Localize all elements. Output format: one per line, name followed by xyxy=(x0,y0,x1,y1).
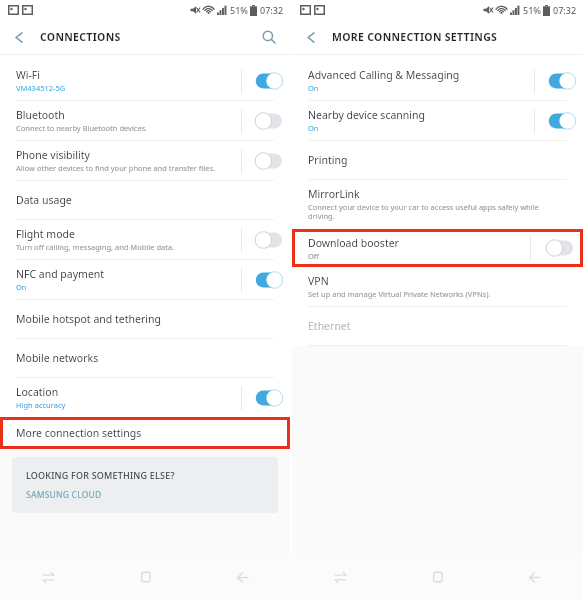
button[interactable]: Home xyxy=(97,554,194,600)
staticText: Data usage xyxy=(16,193,72,207)
staticText: Phone visibility xyxy=(16,148,90,162)
staticText: VM434512-5G xyxy=(16,83,66,93)
staticText: 07:32 xyxy=(553,4,577,16)
staticText: Off xyxy=(308,251,320,261)
staticText: 07:32 xyxy=(260,4,284,16)
staticText: Mobile networks xyxy=(16,351,99,365)
button[interactable]: NFC and payment switch xyxy=(250,271,282,289)
button[interactable]: Wi-Fi switch xyxy=(250,72,282,90)
staticText: Download booster xyxy=(308,236,399,250)
staticText: MORE CONNECTION SETTINGS xyxy=(332,30,498,44)
button[interactable]: Location xyxy=(0,378,290,417)
staticText: Turn off calling, messaging, and Mobile … xyxy=(16,242,175,252)
staticText: LOOKING FOR SOMETHING ELSE? xyxy=(26,469,175,481)
staticText: Location xyxy=(16,385,59,399)
staticText: MirrorLink xyxy=(308,187,360,201)
staticText: High accuracy xyxy=(16,400,66,410)
button[interactable]: Wi-Fi xyxy=(0,61,290,100)
button[interactable]: Mobile networks xyxy=(0,339,290,377)
button[interactable]: Phone visibility switch xyxy=(250,152,282,170)
staticText: Advanced Calling & Messaging xyxy=(308,68,460,82)
button[interactable]: Flight mode switch xyxy=(250,231,282,249)
button[interactable]: MirrorLink xyxy=(292,180,583,229)
button[interactable]: Flight mode xyxy=(0,220,290,259)
button[interactable]: Ethernet xyxy=(292,307,583,345)
staticText: Bluetooth xyxy=(16,108,65,122)
button[interactable]: Printing xyxy=(292,141,583,179)
button[interactable]: Bluetooth switch xyxy=(250,112,282,130)
staticText: SAMSUNG CLOUD xyxy=(26,489,102,501)
button[interactable]: Home xyxy=(389,554,486,600)
staticText: Wi-Fi xyxy=(16,68,41,82)
staticText: Connect to nearby Bluetooth devices. xyxy=(16,123,148,133)
button[interactable]: Phone visibility xyxy=(0,141,290,180)
staticText: Connect your device to your car to acces… xyxy=(308,202,565,222)
button[interactable]: Download booster xyxy=(292,229,583,267)
staticText: Ethernet xyxy=(308,319,351,333)
button[interactable]: Download booster switch xyxy=(541,239,573,257)
button[interactable]: Location switch xyxy=(250,389,282,407)
button[interactable]: Bluetooth xyxy=(0,101,290,140)
staticText: 51% xyxy=(230,4,248,16)
button[interactable]: Advanced Calling & Messaging xyxy=(292,61,583,100)
button[interactable]: Advanced Calling & Messaging switch xyxy=(543,72,575,90)
staticText: NFC and payment xyxy=(16,267,105,281)
button[interactable]: Nearby device scanning xyxy=(292,101,583,140)
button[interactable]: VPN xyxy=(292,267,583,306)
button[interactable]: More connection settings xyxy=(0,417,290,449)
button[interactable]: Back xyxy=(6,24,32,50)
staticText: Mobile hotspot and tethering xyxy=(16,312,161,326)
staticText: Flight mode xyxy=(16,227,75,241)
button[interactable]: Nearby device scanning switch xyxy=(543,112,575,130)
button[interactable]: NFC and payment xyxy=(0,260,290,299)
button[interactable]: Mobile hotspot and tethering xyxy=(0,300,290,338)
staticText: Nearby device scanning xyxy=(308,108,425,122)
staticText: Printing xyxy=(308,153,348,167)
staticText: VPN xyxy=(308,274,329,288)
staticText: 51% xyxy=(523,4,541,16)
staticText: On xyxy=(308,123,319,133)
staticText: Set up and manage Virtual Private Networ… xyxy=(308,289,491,299)
button[interactable]: Back xyxy=(298,24,324,50)
staticText: Allow other devices to find your phone a… xyxy=(16,163,216,173)
button[interactable]: LOOKING FOR SOMETHING ELSE? xyxy=(12,457,278,513)
staticText: More connection settings xyxy=(16,426,142,440)
staticText: On xyxy=(308,83,319,93)
staticText: CONNECTIONS xyxy=(40,30,121,44)
button[interactable]: Search xyxy=(256,24,282,50)
button[interactable]: Data usage xyxy=(0,181,290,219)
staticText: On xyxy=(16,282,27,292)
